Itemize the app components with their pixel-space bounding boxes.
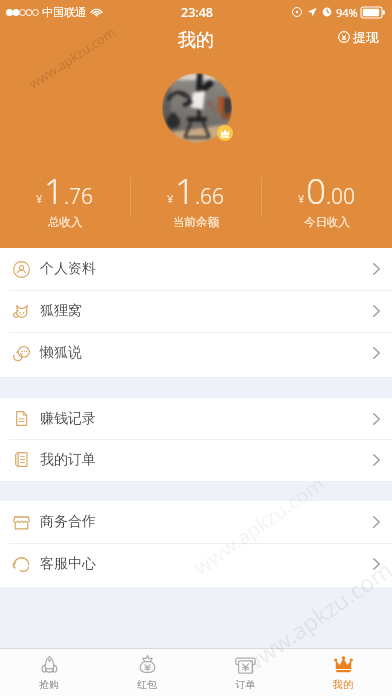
staticText: 总收入 bbox=[48, 215, 83, 229]
staticText: .00 bbox=[326, 182, 356, 211]
staticText: www.apkzu.com bbox=[188, 470, 330, 580]
staticText: 提现 bbox=[353, 29, 379, 45]
staticText: 我的订单 bbox=[40, 451, 96, 469]
staticText: 0 bbox=[306, 167, 326, 215]
button[interactable]: 狐狸窝 bbox=[0, 290, 392, 332]
staticText: 赚钱记录 bbox=[40, 410, 96, 428]
button[interactable]: Profile photo bbox=[162, 73, 232, 143]
staticText: 1 bbox=[44, 167, 64, 215]
staticText: 订单 bbox=[235, 678, 255, 691]
staticText: 23:48 bbox=[181, 4, 214, 21]
staticText: .76 bbox=[64, 182, 94, 211]
staticText: 1 bbox=[175, 167, 195, 215]
button[interactable]: 红包 bbox=[98, 649, 196, 696]
staticText: .66 bbox=[195, 182, 225, 211]
staticText: ¥ bbox=[298, 191, 305, 206]
button[interactable]: ¥ bbox=[0, 164, 130, 229]
staticText: ¥ bbox=[167, 191, 174, 206]
staticText: 个人资料 bbox=[40, 260, 96, 278]
staticText: 当前余额 bbox=[173, 215, 219, 229]
staticText: 我的 bbox=[333, 678, 353, 691]
button[interactable]: 赚钱记录 bbox=[0, 398, 392, 439]
staticText: 我的 bbox=[178, 29, 214, 52]
button[interactable]: 我的 bbox=[294, 649, 392, 696]
button[interactable]: ¥ bbox=[262, 164, 392, 229]
staticText: 今日收入 bbox=[304, 215, 350, 229]
staticText: 94% bbox=[336, 5, 358, 20]
staticText: 懒狐说 bbox=[40, 344, 82, 362]
button[interactable]: 抢购 bbox=[0, 649, 98, 696]
button[interactable]: 订单 bbox=[196, 649, 294, 696]
staticText: 客服中心 bbox=[40, 555, 96, 573]
staticText: 抢购 bbox=[39, 678, 59, 691]
staticText: 红包 bbox=[137, 678, 157, 691]
staticText: www.apkzu.com bbox=[25, 23, 119, 93]
button[interactable]: 懒狐说 bbox=[0, 332, 392, 374]
button[interactable]: 个人资料 bbox=[0, 248, 392, 290]
staticText: 中国联通 bbox=[42, 5, 86, 19]
button[interactable]: 提现 bbox=[336, 28, 381, 46]
staticText: ¥ bbox=[36, 191, 43, 206]
button[interactable]: ¥ bbox=[131, 164, 261, 229]
staticText: www.apkzu.com bbox=[235, 553, 392, 680]
staticText: 商务合作 bbox=[40, 513, 96, 531]
staticText: 狐狸窝 bbox=[40, 302, 82, 320]
button[interactable]: 我的订单 bbox=[0, 439, 392, 480]
button[interactable]: 商务合作 bbox=[0, 501, 392, 543]
button[interactable]: 客服中心 bbox=[0, 543, 392, 585]
